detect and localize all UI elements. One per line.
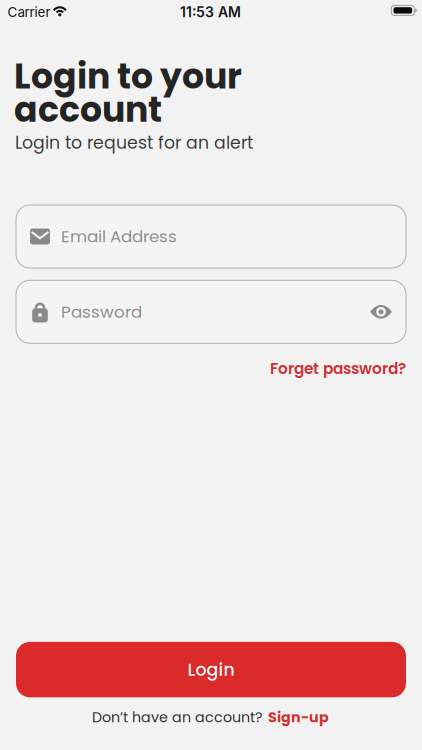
- staticText: account: [14, 85, 162, 134]
- staticText: Carrier: [7, 4, 50, 20]
- staticText: Login to request for an alert: [15, 131, 253, 155]
- staticText: Don’t have an account?: [92, 707, 262, 727]
- button[interactable]: Login: [16, 642, 406, 697]
- staticText: Login to your: [14, 52, 242, 100]
- button[interactable]: Email Address: [16, 205, 406, 268]
- staticText: 11:53 AM: [180, 4, 241, 21]
- staticText: Forget password?: [270, 358, 406, 379]
- staticText: Password: [61, 300, 142, 323]
- button[interactable]: Sign-up: [268, 707, 329, 727]
- staticText: Sign-up: [268, 707, 329, 727]
- staticText: Login: [187, 657, 234, 682]
- button[interactable]: Forget password?: [270, 358, 406, 379]
- staticText: Email Address: [61, 225, 177, 248]
- button[interactable]: Password: [16, 280, 406, 343]
